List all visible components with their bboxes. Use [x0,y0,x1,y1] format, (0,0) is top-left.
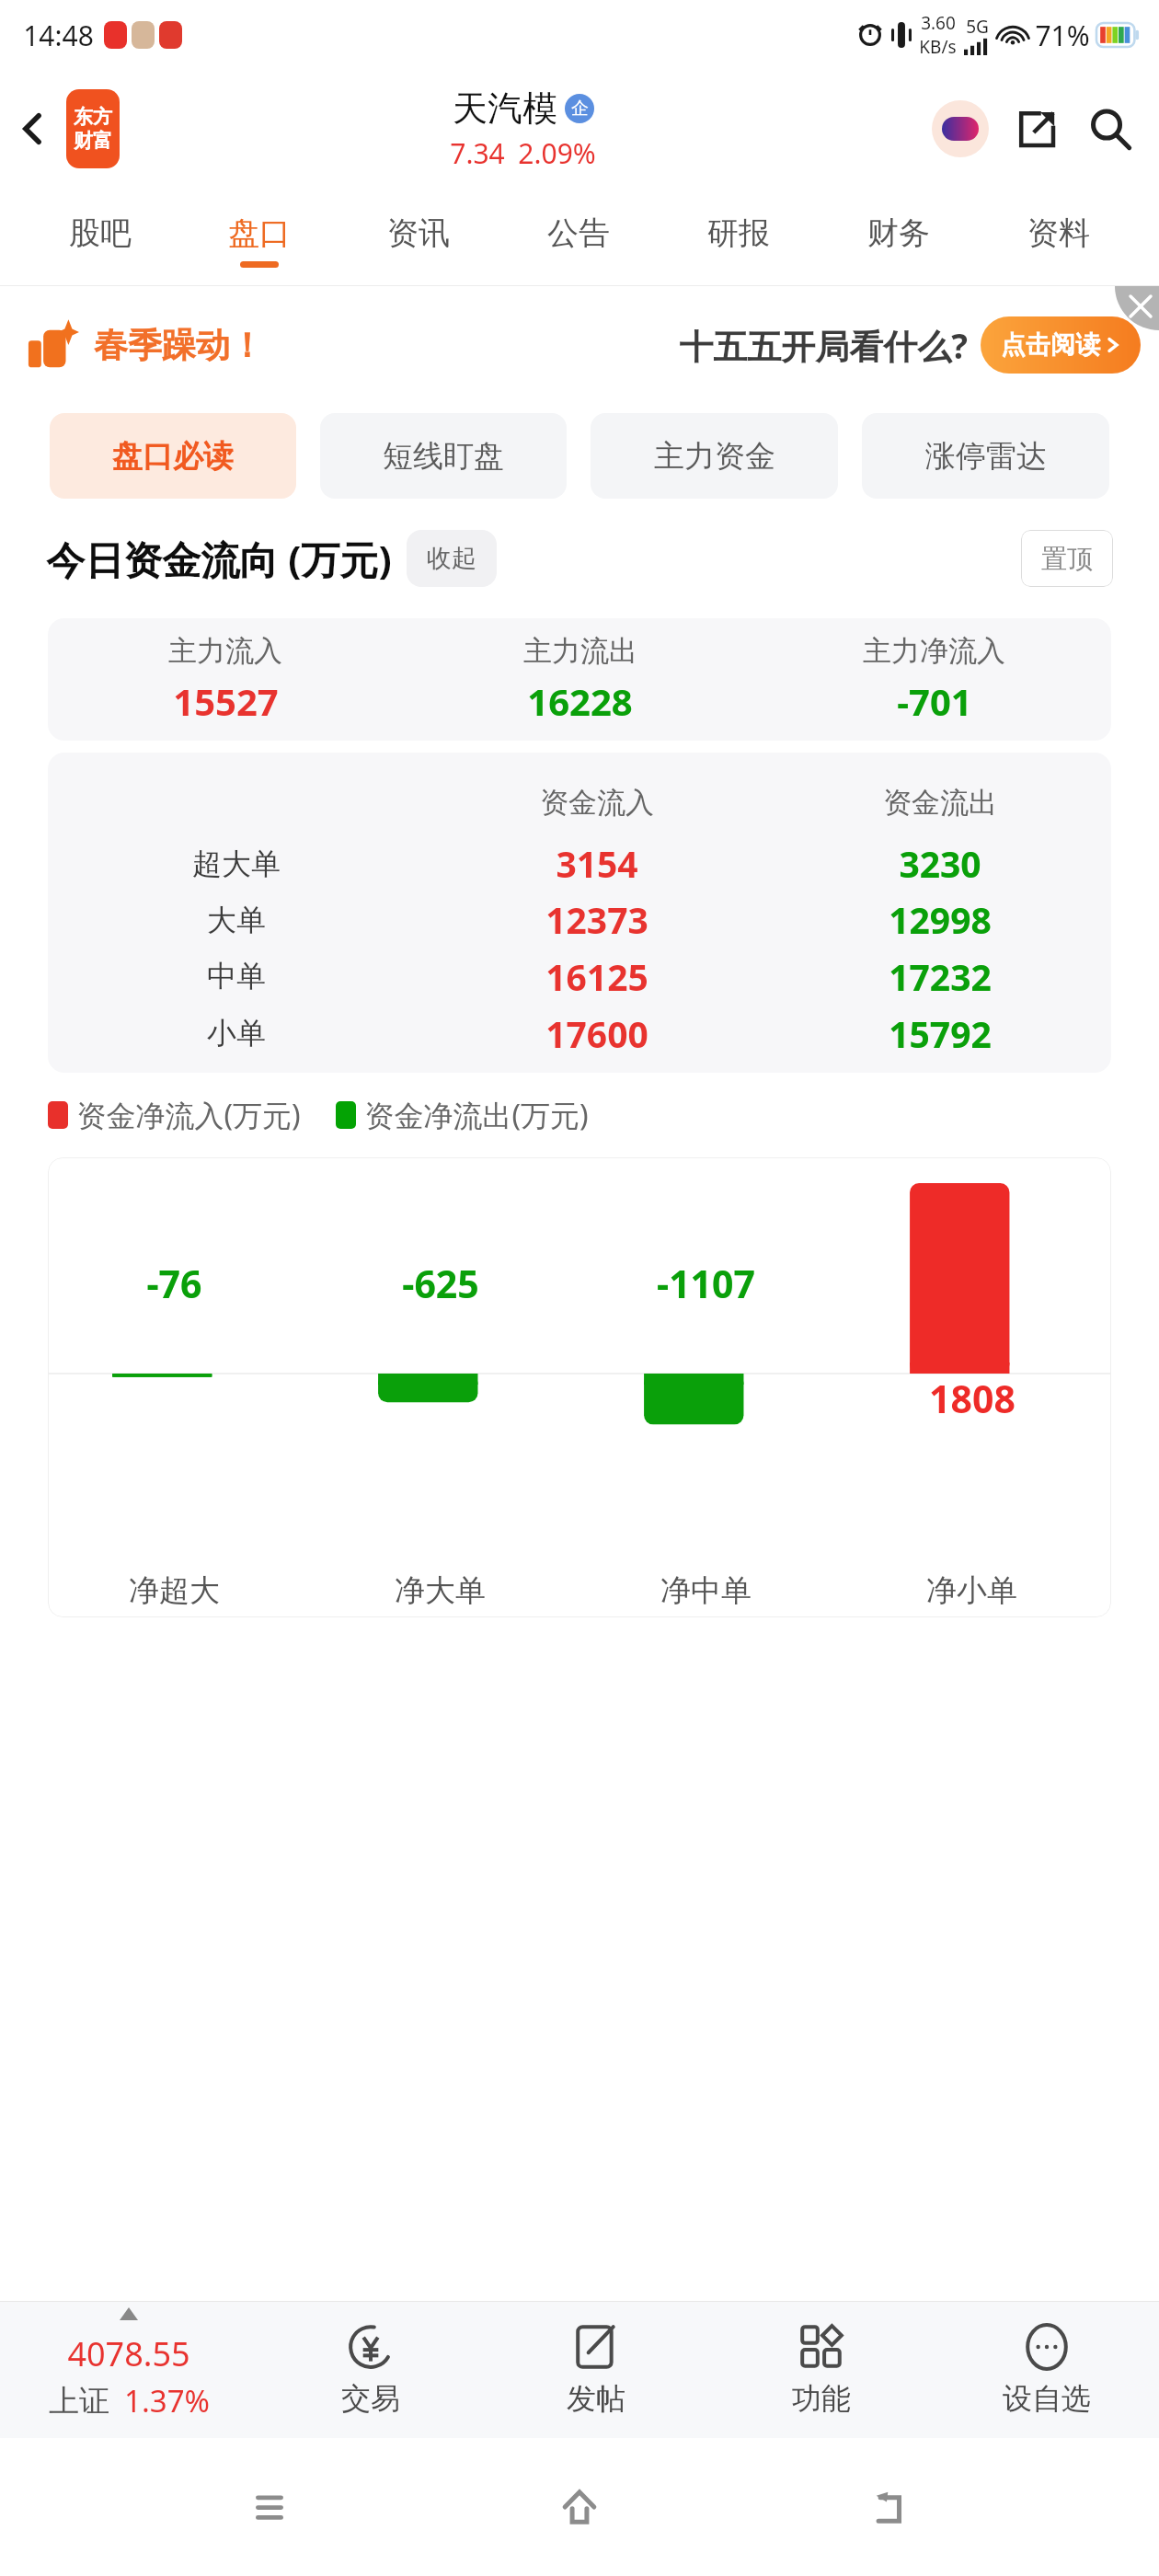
staticText: -76 [146,1258,202,1309]
button[interactable]: -76 [48,1157,1111,1617]
staticText: 天汽模 [453,86,557,131]
button[interactable]: 功能 [708,2302,934,2438]
staticText: 小单 [207,1015,266,1052]
staticText: 资讯 [387,213,450,253]
button[interactable]: 收起 [407,530,497,587]
staticText: 2.09% [518,134,596,172]
staticText: 净小单 [926,1571,1017,1610]
staticText: 12373 [545,895,648,944]
button[interactable]: Recents [228,2466,311,2548]
staticText: 春季躁动！ [94,324,264,367]
staticText: 资金流出 [883,785,997,821]
staticText: 盘口 [228,213,291,253]
staticText: 71% [1035,17,1090,54]
staticText: 1.37% [124,2380,210,2421]
button[interactable]: 涨停雷达 [862,413,1109,499]
staticText: 净大单 [395,1571,486,1610]
button[interactable]: 短线盯盘 [320,413,567,499]
staticText: 3230 [899,839,981,888]
button[interactable]: 资料 [979,188,1139,285]
staticText: 1808 [929,1373,1016,1424]
button[interactable]: 资金流入 [48,753,1111,1073]
button[interactable]: 财务 [819,188,979,285]
staticText: 盘口必读 [112,437,234,476]
staticText: 功能 [792,2380,851,2417]
staticText: 17600 [545,1009,648,1058]
staticText: 短线盯盘 [383,437,504,476]
button[interactable]: Back [0,70,66,188]
staticText: 研报 [707,213,770,253]
button[interactable]: 交易 [258,2302,483,2438]
staticText: 企 [571,98,589,120]
staticText: 涨停雷达 [925,437,1047,476]
staticText: 主力流出 [523,633,637,669]
button[interactable]: 东方 [66,89,120,168]
staticText: 财富 [74,129,112,153]
staticText: 交易 [341,2380,400,2417]
staticText: 4078.55 [67,2331,190,2376]
staticText: KB/s [919,35,957,59]
button[interactable]: Assistant [927,96,993,162]
button[interactable]: 盘口 [179,188,339,285]
button[interactable]: 资讯 [339,188,499,285]
staticText: -701 [897,676,972,726]
staticText: 16228 [527,676,633,726]
staticText: 置顶 [1041,543,1093,575]
staticText: 15792 [889,1009,992,1058]
button[interactable]: 主力流入 [48,618,1111,741]
button[interactable]: 研报 [659,188,819,285]
staticText: 主力净流入 [863,633,1005,669]
staticText: 上证 [49,2382,109,2421]
staticText: 收起 [427,543,476,574]
button[interactable]: 股吧 [20,188,179,285]
button[interactable]: Search [1073,91,1148,167]
staticText: 主力资金 [654,437,775,476]
button[interactable]: Close ad [1115,286,1159,330]
staticText: 超大单 [192,845,281,882]
button[interactable]: Back [849,2466,932,2548]
staticText: 主力流入 [168,633,282,669]
staticText: -625 [402,1258,479,1309]
staticText: 5G [966,15,989,39]
staticText: 净超大 [129,1571,220,1610]
staticText: 15527 [173,676,279,726]
staticText: 点击阅读 [1001,329,1100,361]
staticText: -1107 [657,1258,755,1309]
button[interactable]: Share [1006,98,1067,159]
staticText: 14:48 [23,17,94,54]
button[interactable]: 点击阅读 [981,316,1141,374]
staticText: 7.34 [450,134,505,172]
staticText: 股吧 [69,213,132,253]
staticText: 3154 [556,839,638,888]
button[interactable]: 4078.55 [0,2302,258,2438]
staticText: 今日资金流向 (万元) [46,533,392,585]
staticText: 公告 [547,213,610,253]
staticText: 净中单 [660,1571,752,1610]
staticText: 3.60 [921,11,956,35]
staticText: 16125 [545,952,648,1001]
staticText: 17232 [889,952,992,1001]
button[interactable]: 主力资金 [591,413,838,499]
staticText: 资金流入 [540,785,654,821]
button[interactable]: 设自选 [934,2302,1159,2438]
button[interactable]: 公告 [499,188,659,285]
staticText: 资金净流入(万元) [76,1095,301,1135]
button[interactable]: 盘口必读 [50,413,296,499]
staticText: 发帖 [567,2380,625,2417]
staticText: 中单 [207,958,266,995]
button[interactable]: 置顶 [1021,530,1113,587]
staticText: 12998 [889,895,992,944]
staticText: 设自选 [1003,2380,1091,2417]
staticText: 资料 [1027,213,1090,253]
staticText: 东方 [74,105,112,129]
staticText: 资金净流出(万元) [364,1095,589,1135]
staticText: 大单 [207,902,266,938]
staticText: 财务 [867,213,930,253]
button[interactable]: Home [538,2466,621,2548]
staticText: 十五五开局看什么? [679,322,968,369]
button[interactable]: 发帖 [483,2302,708,2438]
